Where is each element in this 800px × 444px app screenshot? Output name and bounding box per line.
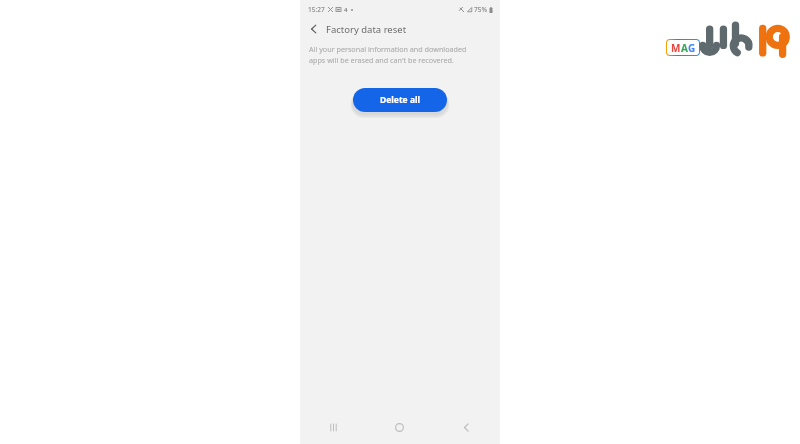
button[interactable]: Delete all <box>353 88 447 112</box>
staticText: M <box>671 41 681 55</box>
staticText: 4 <box>344 6 348 14</box>
button[interactable]: Back <box>305 20 323 38</box>
button[interactable]: Home <box>366 410 433 444</box>
staticText: A <box>681 41 688 55</box>
staticText: G <box>688 41 696 55</box>
button[interactable]: Recent apps <box>300 410 366 444</box>
staticText: All your personal information and downlo… <box>309 44 491 65</box>
staticText: 75% <box>474 5 487 14</box>
staticText: 15:27 <box>308 5 325 14</box>
button[interactable]: Back <box>433 410 500 444</box>
staticText: Factory data reset <box>326 23 407 36</box>
staticText: Delete all <box>380 94 421 106</box>
